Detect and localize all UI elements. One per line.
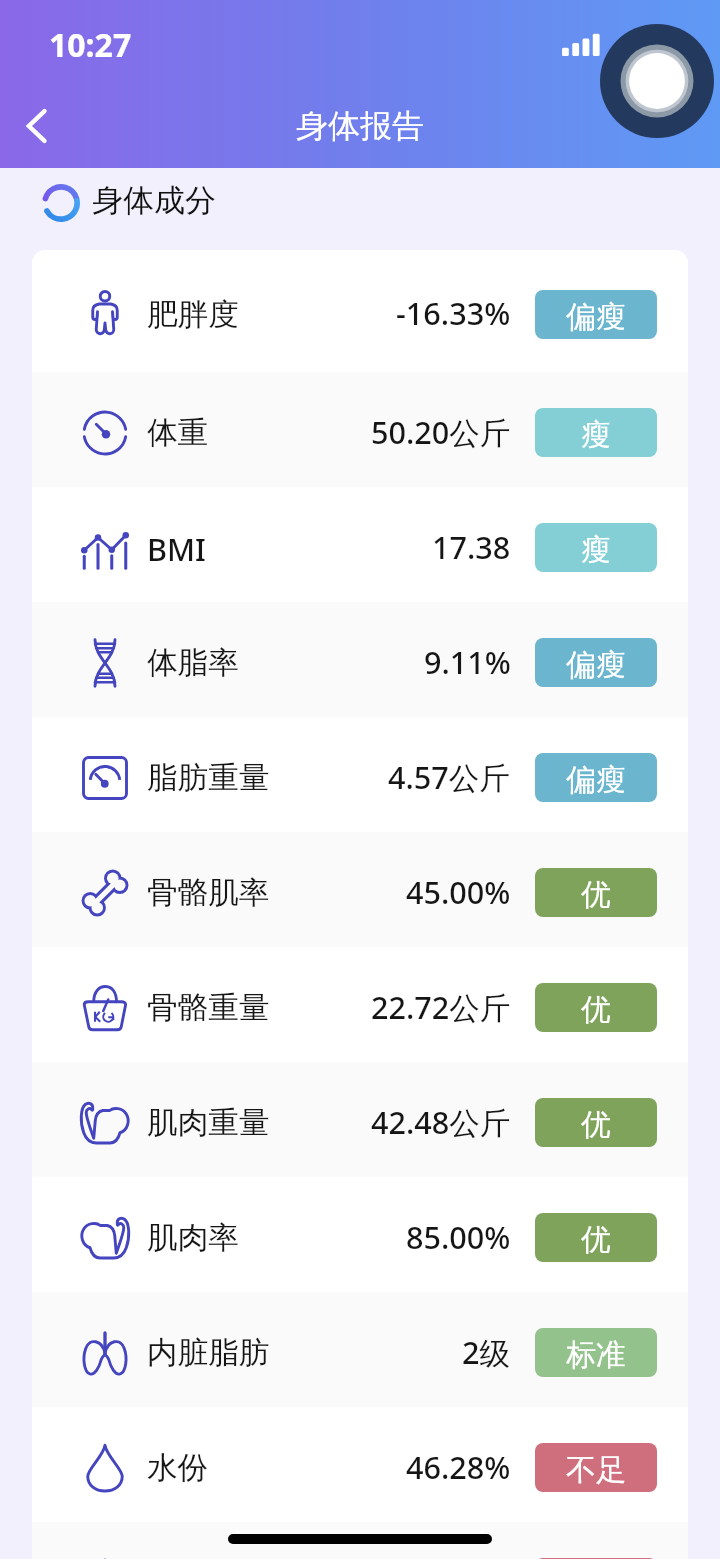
staticText: 9.11%	[424, 641, 511, 683]
staticText: 50.20公斤	[371, 411, 511, 453]
staticText: 标准	[566, 1336, 626, 1374]
button[interactable]: 脂肪重量	[32, 717, 688, 832]
staticText: 45.00%	[406, 871, 511, 913]
staticText: 骨骼肌率	[147, 874, 270, 913]
button[interactable]: 肥胖度	[32, 250, 688, 372]
staticText: 身体报告	[296, 106, 424, 146]
button[interactable]: 优	[535, 983, 657, 1032]
staticText: 水份	[147, 1449, 209, 1488]
button[interactable]: 优	[535, 1098, 657, 1147]
staticText: 优	[581, 991, 611, 1029]
button[interactable]: 偏瘦	[535, 753, 657, 802]
staticText: 17.38	[432, 526, 511, 568]
staticText: 体重	[147, 414, 209, 453]
staticText: 瘦	[581, 531, 611, 569]
staticText: 10:27	[49, 23, 132, 67]
staticText: 优	[581, 1106, 611, 1144]
staticText: 不足	[566, 1451, 626, 1489]
staticText: 4.57公斤	[388, 756, 511, 798]
staticText: 体脂率	[147, 644, 239, 683]
button[interactable]: 骨骼重量	[32, 947, 688, 1062]
button[interactable]: 基础代谢	[32, 1522, 688, 1559]
staticText: 脂肪重量	[147, 759, 270, 798]
staticText: 优	[581, 876, 611, 914]
button[interactable]: 肌肉重量	[32, 1062, 688, 1177]
staticText: 优	[581, 1221, 611, 1259]
button[interactable]: 体脂率	[32, 602, 688, 717]
staticText: 偏瘦	[566, 646, 626, 684]
button[interactable]: BMI	[32, 487, 688, 602]
button[interactable]: 标准	[535, 1328, 657, 1377]
staticText: BMI	[147, 528, 206, 570]
staticText: 85.00%	[406, 1216, 511, 1258]
button[interactable]: Back	[7, 96, 67, 156]
staticText: -16.33%	[396, 292, 511, 334]
staticText: 46.28%	[406, 1446, 511, 1488]
button[interactable]: 偏瘦	[535, 290, 657, 339]
button[interactable]: 骨骼肌率	[32, 832, 688, 947]
button[interactable]: 瘦	[535, 408, 657, 457]
staticText: 22.72公斤	[371, 986, 511, 1028]
staticText: 偏瘦	[566, 298, 626, 336]
staticText: 42.48公斤	[371, 1101, 511, 1143]
button[interactable]: 内脏脂肪	[32, 1292, 688, 1407]
staticText: 肥胖度	[147, 296, 239, 335]
staticText: 瘦	[581, 416, 611, 454]
button[interactable]: 偏瘦	[535, 638, 657, 687]
button[interactable]: 瘦	[535, 523, 657, 572]
button[interactable]: 优	[535, 868, 657, 917]
button[interactable]: 优	[535, 1213, 657, 1262]
staticText: 骨骼重量	[147, 989, 270, 1028]
staticText: 偏瘦	[566, 761, 626, 799]
button[interactable]: 不足	[535, 1558, 657, 1559]
staticText: 肌肉率	[147, 1219, 239, 1258]
staticText: 肌肉重量	[147, 1104, 270, 1143]
button[interactable]: 肌肉率	[32, 1177, 688, 1292]
staticText: 2级	[462, 1331, 511, 1373]
staticText: 内脏脂肪	[147, 1334, 270, 1373]
button[interactable]: 体重	[32, 372, 688, 487]
button[interactable]: 水份	[32, 1407, 688, 1522]
button[interactable]: 不足	[535, 1443, 657, 1492]
staticText: 身体成分	[92, 181, 216, 220]
